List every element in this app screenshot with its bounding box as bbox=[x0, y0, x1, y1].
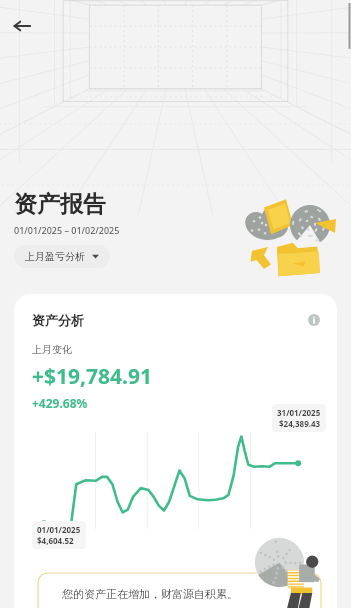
staticText: 01/01/2025 – 01/02/2025 bbox=[14, 224, 120, 236]
staticText: +$19,784.91 bbox=[32, 362, 152, 391]
staticText: $24,389.43 bbox=[279, 418, 321, 429]
staticText: 资产报告 bbox=[14, 190, 106, 219]
staticText: 资产分析 bbox=[32, 312, 84, 328]
staticText: $4,604.52 bbox=[37, 535, 74, 546]
button[interactable]: Back bbox=[6, 10, 38, 42]
staticText: 上月盈亏分析 bbox=[25, 250, 85, 263]
staticText: +429.68% bbox=[32, 395, 88, 411]
staticText: 01/01/2025 bbox=[37, 524, 81, 535]
staticText: 您的资产正在增加，财富源自积累。 bbox=[62, 587, 238, 601]
button[interactable]: 资产分析 bbox=[14, 294, 337, 608]
staticText: 上月变化 bbox=[32, 343, 72, 356]
button[interactable]: Info bbox=[305, 311, 323, 329]
staticText: 31/01/2025 bbox=[277, 407, 321, 418]
button[interactable]: 上月盈亏分析 bbox=[14, 245, 110, 268]
